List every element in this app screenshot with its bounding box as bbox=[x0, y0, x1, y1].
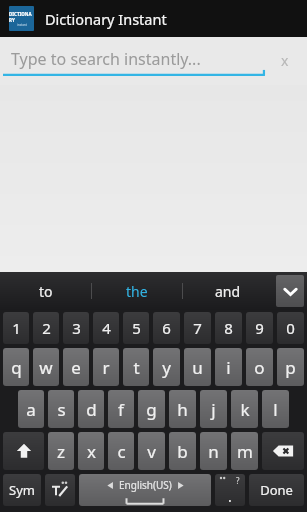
button[interactable]: h bbox=[169, 390, 196, 428]
staticText: i bbox=[226, 356, 231, 379]
button[interactable]: 9 bbox=[246, 312, 273, 344]
staticText: and bbox=[215, 282, 241, 301]
button[interactable]: v bbox=[138, 432, 165, 470]
staticText: ? bbox=[236, 475, 240, 486]
staticText: Done bbox=[260, 481, 293, 499]
staticText: 3 bbox=[72, 318, 81, 338]
staticText: Sym bbox=[9, 481, 35, 499]
button[interactable]: e bbox=[63, 348, 89, 386]
button[interactable]: 4 bbox=[93, 312, 119, 344]
button[interactable]: the bbox=[92, 272, 182, 310]
other: Punctuation bbox=[215, 474, 245, 506]
staticText: Type to search instantly... bbox=[11, 48, 201, 70]
button[interactable]: Expand suggestions bbox=[276, 275, 304, 307]
staticText: q bbox=[11, 356, 22, 379]
staticText: 1 bbox=[12, 318, 21, 338]
staticText: s bbox=[57, 398, 66, 421]
button[interactable]: 0 bbox=[277, 312, 304, 344]
staticText: r bbox=[102, 356, 110, 379]
staticText: m bbox=[237, 440, 253, 463]
button[interactable]: i bbox=[215, 348, 242, 386]
staticText: 4 bbox=[102, 318, 111, 338]
button[interactable]: Done bbox=[249, 474, 304, 506]
staticText: English(US) bbox=[119, 478, 172, 492]
staticText: . bbox=[228, 487, 232, 506]
staticText: instant bbox=[17, 23, 27, 27]
button[interactable]: u bbox=[184, 348, 211, 386]
staticText: f bbox=[118, 398, 124, 421]
button[interactable]: 8 bbox=[215, 312, 242, 344]
button[interactable]: 7 bbox=[184, 312, 211, 344]
button[interactable]: a bbox=[18, 390, 44, 428]
staticText: DICTIONARY bbox=[9, 11, 34, 23]
staticText: the bbox=[126, 282, 148, 301]
staticText: k bbox=[240, 398, 250, 421]
staticText: 2 bbox=[42, 318, 51, 338]
staticText: 7 bbox=[193, 318, 202, 338]
staticText: 8 bbox=[224, 318, 233, 338]
button[interactable]: r bbox=[93, 348, 119, 386]
staticText: n bbox=[208, 440, 219, 463]
staticText: 6 bbox=[162, 318, 171, 338]
button[interactable]: m bbox=[231, 432, 258, 470]
staticText: 5 bbox=[132, 318, 141, 338]
staticText: Dictionary Instant bbox=[45, 9, 167, 29]
staticText: o bbox=[254, 356, 265, 379]
staticText: 9 bbox=[255, 318, 264, 338]
button[interactable]: English(US) bbox=[79, 474, 211, 506]
other: Shift bbox=[15, 442, 33, 460]
staticText: b bbox=[177, 440, 188, 463]
staticText: x bbox=[87, 440, 96, 463]
staticText: y bbox=[162, 356, 171, 379]
button[interactable]: 1 bbox=[3, 312, 29, 344]
staticText: v bbox=[147, 440, 156, 463]
button[interactable]: k bbox=[231, 390, 258, 428]
button[interactable]: c bbox=[108, 432, 134, 470]
staticText: 0 bbox=[286, 318, 295, 338]
staticText: g bbox=[146, 398, 157, 421]
button[interactable]: 3 bbox=[63, 312, 89, 344]
button[interactable]: y bbox=[153, 348, 180, 386]
staticText: p bbox=[285, 356, 296, 379]
button[interactable]: p bbox=[277, 348, 304, 386]
button[interactable]: 6 bbox=[153, 312, 180, 344]
staticText: w bbox=[39, 356, 53, 379]
staticText: x bbox=[281, 51, 289, 70]
staticText: l bbox=[273, 398, 278, 421]
staticText: t bbox=[133, 356, 140, 379]
staticText: j bbox=[211, 398, 216, 421]
staticText: to bbox=[39, 282, 53, 301]
button[interactable]: z bbox=[48, 432, 74, 470]
button[interactable]: Shift bbox=[3, 432, 44, 470]
button[interactable]: Backspace bbox=[262, 432, 304, 470]
button[interactable]: j bbox=[200, 390, 227, 428]
button[interactable]: Clear search bbox=[271, 46, 299, 74]
button[interactable]: App icon bbox=[9, 6, 34, 31]
button[interactable]: l bbox=[262, 390, 289, 428]
button[interactable]: f bbox=[108, 390, 134, 428]
button[interactable]: g bbox=[138, 390, 165, 428]
staticText: u bbox=[192, 356, 203, 379]
staticText: a bbox=[26, 398, 36, 421]
button[interactable]: q bbox=[3, 348, 29, 386]
staticText: h bbox=[177, 398, 188, 421]
button[interactable]: and bbox=[183, 272, 273, 310]
button[interactable]: Sym bbox=[3, 474, 41, 506]
button[interactable]: t bbox=[123, 348, 149, 386]
button[interactable]: s bbox=[48, 390, 74, 428]
button[interactable]: w bbox=[33, 348, 59, 386]
button[interactable]: 2 bbox=[33, 312, 59, 344]
button[interactable]: d bbox=[78, 390, 104, 428]
staticText: d bbox=[86, 398, 97, 421]
button[interactable]: 5 bbox=[123, 312, 149, 344]
other: Backspace bbox=[272, 440, 294, 462]
button[interactable]: Change input method bbox=[45, 474, 75, 506]
button[interactable]: to bbox=[0, 272, 91, 310]
button[interactable]: b bbox=[169, 432, 196, 470]
staticText: z bbox=[57, 440, 65, 463]
button[interactable]: n bbox=[200, 432, 227, 470]
button[interactable]: Punctuation bbox=[215, 474, 245, 506]
button[interactable]: x bbox=[78, 432, 104, 470]
button[interactable]: o bbox=[246, 348, 273, 386]
staticText: e bbox=[71, 356, 81, 379]
